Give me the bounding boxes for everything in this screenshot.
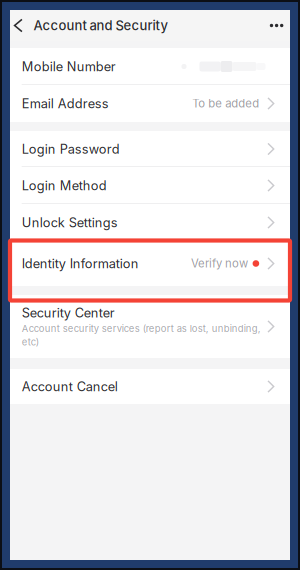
staticText: Mobile Number: [22, 59, 116, 74]
staticText: Account security services (report as los…: [22, 323, 261, 334]
staticText: Unlock Settings: [22, 215, 118, 230]
staticText: etc): [22, 336, 39, 348]
staticText: Verify now: [191, 257, 248, 270]
button[interactable]: Login Method: [10, 167, 290, 204]
staticText: Login Method: [22, 178, 107, 193]
button[interactable]: Email Address: [10, 85, 290, 122]
button[interactable]: Identity Information: [10, 241, 290, 286]
staticText: Security Center: [22, 305, 115, 321]
staticText: Login Password: [22, 141, 120, 157]
staticText: Identity Information: [22, 256, 139, 271]
button[interactable]: Mobile Number: [10, 48, 290, 85]
button[interactable]: Unlock Settings: [10, 204, 290, 241]
button[interactable]: More options: [258, 10, 290, 41]
button[interactable]: Back: [10, 10, 33, 41]
staticText: Account Cancel: [22, 379, 118, 394]
button[interactable]: Security Center: [10, 295, 290, 358]
button[interactable]: Account Cancel: [10, 369, 290, 404]
staticText: Email Address: [22, 96, 109, 111]
staticText: Account and Security: [33, 18, 168, 33]
button[interactable]: Login Password: [10, 131, 290, 167]
staticText: To be added: [192, 97, 259, 110]
